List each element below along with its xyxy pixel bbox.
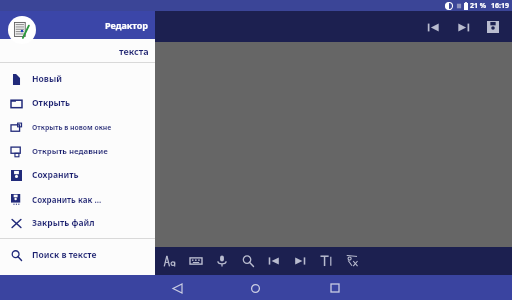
staticText: Сохранить — [32, 169, 79, 181]
button[interactable]: Сохранить — [0, 163, 155, 187]
button[interactable]: Home — [243, 276, 267, 300]
button[interactable]: Go to start — [420, 14, 446, 40]
staticText: Поиск в тексте — [32, 249, 97, 261]
staticText: Закрыть файл — [32, 217, 95, 229]
staticText: 16:19 — [491, 1, 509, 11]
button[interactable]: Открыть недавние — [0, 139, 155, 163]
staticText: Открыть — [32, 97, 71, 109]
button[interactable]: Открыть в новом окне — [0, 115, 155, 139]
button[interactable]: Back — [165, 276, 189, 300]
staticText: 21 % — [470, 1, 487, 11]
button[interactable]: Text format — [313, 248, 339, 274]
button[interactable]: Recent apps — [323, 276, 347, 300]
button[interactable]: Clear format — [339, 248, 365, 274]
button[interactable]: Открыть — [0, 91, 155, 115]
button[interactable]: Save — [480, 14, 506, 40]
button[interactable]: Закрыть файл — [0, 211, 155, 235]
button[interactable]: Go to start — [261, 248, 287, 274]
button[interactable]: Сохранить как ... — [0, 187, 155, 211]
button[interactable]: Search — [235, 248, 261, 274]
staticText: Новый — [32, 73, 62, 85]
button[interactable]: Go to end — [450, 14, 476, 40]
button[interactable]: Поиск в тексте — [0, 243, 155, 267]
button[interactable]: Новый — [0, 67, 155, 91]
button[interactable]: Keyboard — [183, 248, 209, 274]
staticText: Открыть в новом окне — [32, 123, 112, 132]
staticText: Сохранить как ... — [32, 194, 102, 205]
button[interactable]: Go to end — [287, 248, 313, 274]
button[interactable]: Voice input — [209, 248, 235, 274]
staticText: текста — [119, 45, 149, 57]
staticText: Редактор — [105, 19, 149, 31]
staticText: Открыть недавние — [32, 146, 108, 157]
button[interactable]: Font size — [157, 248, 183, 274]
